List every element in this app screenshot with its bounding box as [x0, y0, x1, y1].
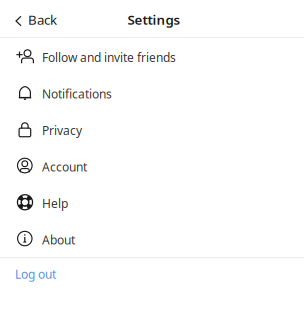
button[interactable]: Back	[0, 0, 67, 37]
button[interactable]: Help	[0, 184, 304, 220]
button[interactable]: Account	[0, 147, 304, 184]
button[interactable]: Privacy	[0, 111, 304, 147]
button[interactable]: Notifications	[0, 74, 304, 111]
staticText: Log out	[15, 266, 56, 282]
staticText: Notifications	[42, 86, 112, 102]
button[interactable]: Follow and invite friends	[0, 38, 304, 74]
staticText: Privacy	[42, 122, 82, 138]
staticText: Account	[42, 159, 87, 175]
staticText: Help	[42, 195, 68, 211]
staticText: Settings	[127, 11, 180, 28]
staticText: Back	[28, 11, 57, 28]
staticText: About	[42, 232, 75, 248]
button[interactable]: About	[0, 220, 304, 257]
button[interactable]: Log out	[0, 258, 304, 290]
staticText: Follow and invite friends	[42, 49, 176, 65]
